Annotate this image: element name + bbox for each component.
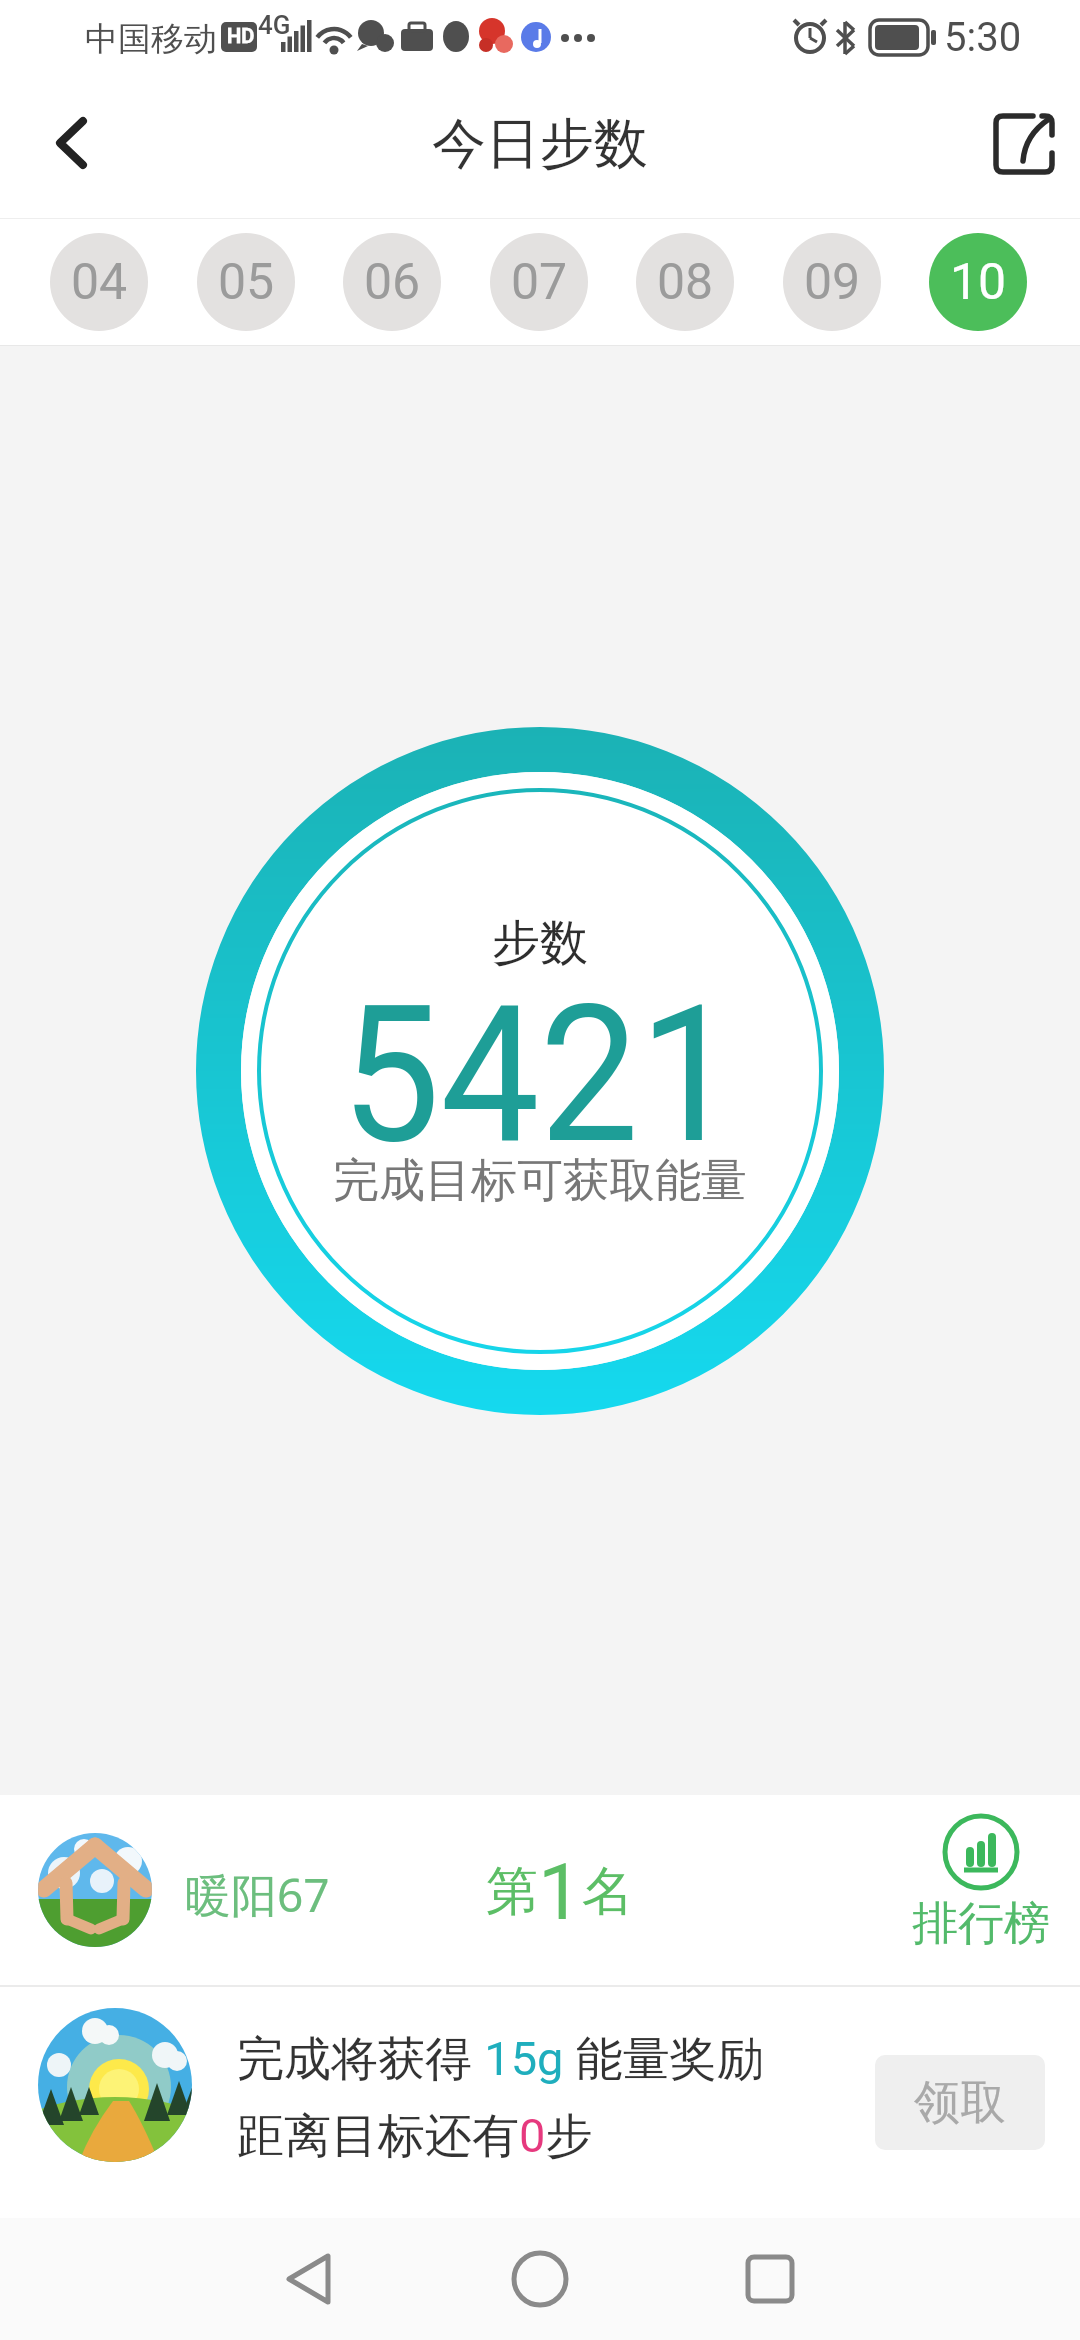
button[interactable]: 04 <box>50 233 148 331</box>
button[interactable]: 领取 <box>875 2055 1045 2150</box>
button[interactable]: 06 <box>343 233 441 331</box>
button[interactable]: 排行榜 <box>912 1813 1050 1949</box>
staticText: 暖阳67 <box>185 1863 330 1926</box>
staticText: 10 <box>950 253 1007 312</box>
button[interactable]: 暖阳67 <box>0 1795 1080 1985</box>
staticText: 排行榜 <box>912 1895 1050 1953</box>
button[interactable] <box>976 70 1080 218</box>
staticText: 中国移动 <box>85 18 217 60</box>
staticText: 距离目标还有0步 <box>237 2107 593 2166</box>
staticText: 08 <box>657 253 714 312</box>
staticText: 完成将获得 15g 能量奖励 <box>237 2025 764 2089</box>
staticText: 名 <box>582 1859 634 1925</box>
staticText: 领取 <box>914 2074 1006 2132</box>
staticText: 完成目标可获取能量 <box>333 1152 747 1210</box>
staticText: 5:30 <box>944 14 1022 61</box>
staticText: 09 <box>804 253 861 312</box>
button[interactable]: 08 <box>636 233 734 331</box>
staticText: 4G <box>258 10 291 40</box>
button[interactable]: 05 <box>197 233 295 331</box>
button[interactable] <box>248 2218 368 2340</box>
staticText: 04 <box>71 253 128 312</box>
staticText: 07 <box>511 253 568 312</box>
button[interactable]: 07 <box>490 233 588 331</box>
staticText: 06 <box>364 253 421 312</box>
button[interactable] <box>710 2218 830 2340</box>
staticText: 05 <box>218 253 275 312</box>
staticText: 第 <box>486 1859 538 1925</box>
button[interactable] <box>480 2218 600 2340</box>
button[interactable]: 09 <box>783 233 881 331</box>
button[interactable]: 10 <box>929 233 1027 331</box>
staticText: 1 <box>538 1847 582 1938</box>
staticText: 步数 <box>492 913 588 973</box>
staticText: 5421 <box>341 964 739 1187</box>
button[interactable] <box>0 70 130 218</box>
staticText: 今日步数 <box>432 110 648 178</box>
staticText: HD <box>227 24 255 47</box>
